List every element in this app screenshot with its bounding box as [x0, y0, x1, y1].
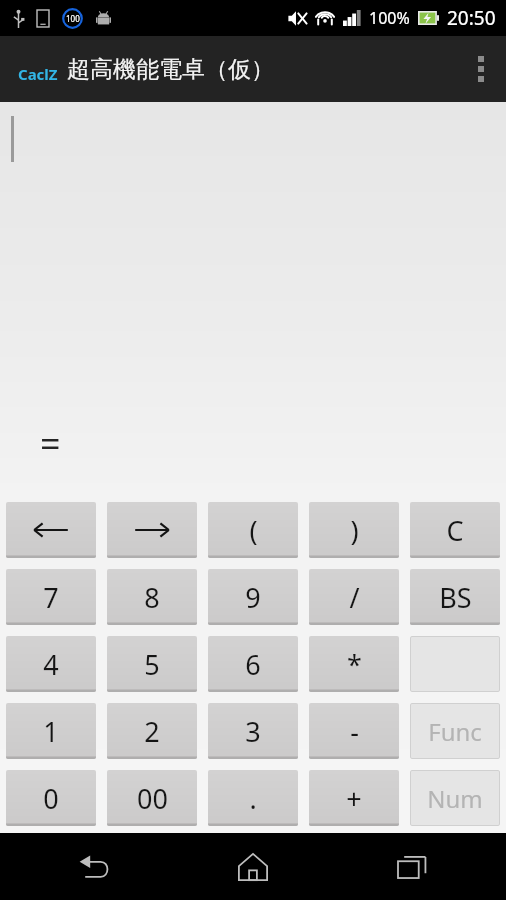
staticText: Func — [428, 715, 482, 748]
button[interactable]: Num — [410, 770, 500, 826]
staticText: 6 — [245, 646, 261, 683]
button[interactable]: 6 — [208, 636, 298, 692]
staticText: 4 — [43, 646, 59, 683]
button[interactable]: 9 — [208, 569, 298, 625]
button[interactable]: Recent apps — [347, 833, 477, 900]
button[interactable]: 0 — [6, 770, 96, 826]
staticText: 8 — [144, 579, 160, 616]
staticText: 100 — [66, 13, 80, 24]
button[interactable]: Blank key — [410, 636, 500, 692]
staticText: 7 — [43, 579, 59, 616]
button[interactable]: Home — [188, 833, 318, 900]
staticText: + — [346, 780, 362, 817]
button[interactable]: Func — [410, 703, 500, 759]
button[interactable]: + — [309, 770, 399, 826]
staticText: . — [249, 780, 257, 817]
staticText: C — [446, 512, 464, 549]
button[interactable]: - — [309, 703, 399, 759]
staticText: Num — [427, 782, 483, 815]
button[interactable]: 5 — [107, 636, 197, 692]
button[interactable]: 1 — [6, 703, 96, 759]
staticText: - — [350, 713, 359, 750]
button[interactable]: Cursor right — [107, 502, 197, 558]
staticText: 100% — [369, 7, 410, 29]
staticText: BS — [439, 579, 472, 616]
staticText: / — [349, 579, 360, 616]
button[interactable]: 8 — [107, 569, 197, 625]
button[interactable]: 7 — [6, 569, 96, 625]
button[interactable]: Cursor left — [6, 502, 96, 558]
button[interactable]: 4 — [6, 636, 96, 692]
button[interactable]: . — [208, 770, 298, 826]
staticText: CaclZ — [18, 64, 58, 84]
button[interactable]: 00 — [107, 770, 197, 826]
button[interactable]: C — [410, 502, 500, 558]
staticText: 9 — [245, 579, 261, 616]
staticText: 20:50 — [447, 5, 496, 31]
button[interactable]: Back — [29, 833, 159, 900]
button[interactable]: / — [309, 569, 399, 625]
staticText: 3 — [245, 713, 261, 750]
button[interactable]: 3 — [208, 703, 298, 759]
button[interactable]: BS — [410, 569, 500, 625]
staticText: 超高機能電卓（仮） — [67, 55, 274, 84]
staticText: 5 — [144, 646, 160, 683]
staticText: 1 — [43, 713, 59, 750]
staticText: ) — [350, 512, 359, 549]
staticText: 2 — [144, 713, 160, 750]
staticText: 0 — [43, 780, 59, 817]
staticText: 00 — [137, 780, 168, 817]
staticText: * — [347, 646, 362, 683]
staticText: = — [40, 419, 61, 468]
button[interactable]: ( — [208, 502, 298, 558]
button[interactable]: ) — [309, 502, 399, 558]
button[interactable]: * — [309, 636, 399, 692]
staticText: ( — [249, 512, 258, 549]
button[interactable]: More options — [456, 36, 506, 102]
button[interactable]: 2 — [107, 703, 197, 759]
